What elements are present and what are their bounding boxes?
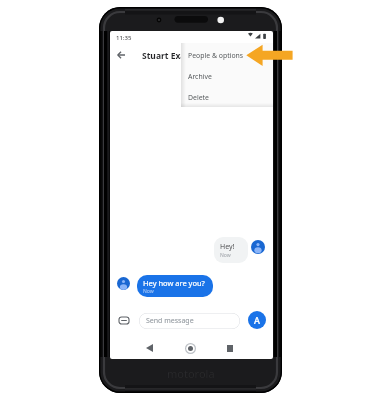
button[interactable]: Archive [181,66,273,87]
staticText: Now [143,288,154,295]
button[interactable]: Attach sticker [117,313,131,327]
button[interactable]: Hey! [214,237,248,263]
button[interactable]: Delete [181,87,273,108]
button[interactable]: Home [180,338,200,358]
staticText: Hey! [220,242,235,252]
button[interactable]: Recents [220,338,240,358]
staticText: Stuart Example [142,50,207,62]
staticText: Now [220,252,231,259]
staticText: Delete [188,93,209,102]
staticText: motorola [167,366,215,381]
staticText: People & options [188,51,244,60]
staticText: Send message [146,316,194,326]
staticText: A [254,314,260,326]
button[interactable]: Hey how are you? [137,275,213,297]
button[interactable]: A [248,311,266,329]
button[interactable]: Send message [139,313,240,329]
button[interactable]: People & options [181,45,273,66]
staticText: Archive [188,72,212,81]
staticText: 11:35 [116,34,132,42]
button[interactable]: Back [110,44,132,66]
button[interactable]: Back [139,338,159,358]
staticText: Hey how are you? [143,278,205,288]
